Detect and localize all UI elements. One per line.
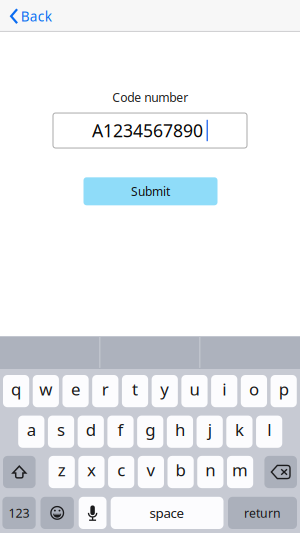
staticText: d: [86, 418, 96, 441]
button[interactable]: q: [3, 375, 29, 407]
staticText: q: [11, 377, 21, 400]
staticText: return: [244, 504, 281, 521]
button[interactable]: p: [271, 375, 297, 407]
button[interactable]: d: [78, 416, 104, 448]
staticText: m: [232, 458, 248, 481]
button[interactable]: Dictation: [79, 497, 106, 529]
staticText: 123: [8, 504, 29, 521]
staticText: n: [205, 458, 215, 481]
staticText: l: [267, 418, 271, 441]
staticText: i: [222, 377, 226, 400]
staticText: z: [58, 458, 66, 481]
button[interactable]: n: [197, 456, 223, 488]
staticText: v: [146, 458, 155, 481]
button[interactable]: u: [181, 375, 208, 407]
button[interactable]: i: [211, 375, 237, 407]
button[interactable]: x: [78, 456, 104, 488]
staticText: x: [87, 458, 96, 481]
button[interactable]: Delete: [264, 456, 297, 488]
button[interactable]: r: [92, 375, 118, 407]
button[interactable]: t: [122, 375, 148, 407]
staticText: y: [160, 377, 169, 400]
button[interactable]: Back: [0, 1, 62, 32]
button[interactable]: s: [48, 416, 74, 448]
staticText: w: [39, 377, 52, 400]
staticText: Code number: [112, 89, 188, 105]
button[interactable]: e: [62, 375, 89, 407]
staticText: t: [132, 377, 138, 400]
staticText: j: [208, 418, 212, 441]
staticText: b: [176, 458, 186, 481]
staticText: g: [145, 418, 155, 441]
button[interactable]: l: [256, 416, 282, 448]
button[interactable]: a: [18, 416, 44, 448]
staticText: a: [27, 418, 36, 441]
staticText: s: [57, 418, 65, 441]
staticText: k: [235, 418, 244, 441]
button[interactable]: g: [137, 416, 163, 448]
button[interactable]: z: [49, 456, 75, 488]
staticText: Submit: [131, 183, 170, 199]
staticText: Back: [21, 7, 52, 25]
button[interactable]: m: [227, 456, 253, 488]
button[interactable]: o: [241, 375, 267, 407]
button[interactable]: space: [111, 497, 223, 529]
button[interactable]: 123: [2, 497, 36, 529]
staticText: p: [279, 377, 289, 400]
button[interactable]: h: [167, 416, 193, 448]
staticText: e: [71, 377, 80, 400]
staticText: h: [175, 418, 185, 441]
staticText: u: [189, 377, 199, 400]
button[interactable]: f: [107, 416, 134, 448]
button[interactable]: c: [108, 456, 134, 488]
button[interactable]: Shift: [3, 456, 36, 488]
staticText: f: [117, 418, 123, 441]
button[interactable]: w: [33, 375, 59, 407]
staticText: space: [150, 504, 185, 522]
button[interactable]: y: [152, 375, 178, 407]
button[interactable]: k: [226, 416, 252, 448]
staticText: o: [249, 377, 259, 400]
staticText: c: [117, 458, 125, 481]
button[interactable]: v: [138, 456, 164, 488]
button[interactable]: Submit: [83, 177, 217, 205]
button[interactable]: Emoji: [40, 497, 74, 529]
button[interactable]: j: [197, 416, 223, 448]
staticText: A1234567890: [92, 118, 203, 142]
button[interactable]: b: [167, 456, 194, 488]
button[interactable]: return: [228, 497, 297, 529]
staticText: r: [102, 377, 109, 400]
